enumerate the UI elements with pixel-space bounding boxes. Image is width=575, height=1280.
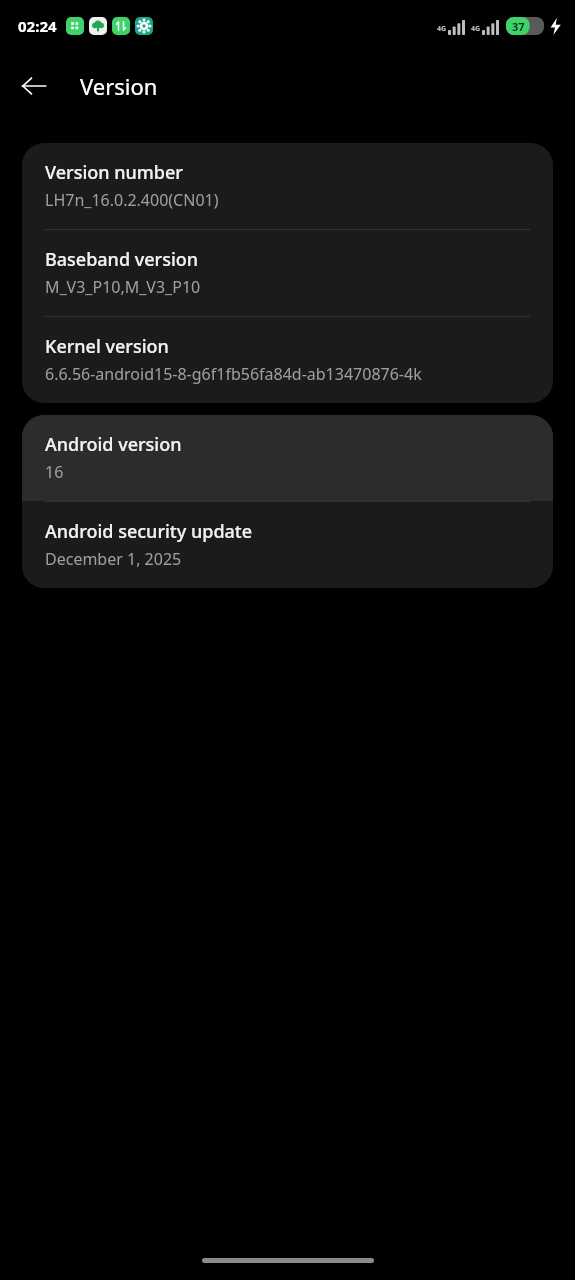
staticText: 02:24: [18, 16, 57, 36]
staticText: Version: [80, 71, 158, 101]
staticText: Version number: [45, 160, 183, 185]
button[interactable]: Android security update: [22, 502, 553, 588]
button[interactable]: Back: [9, 61, 59, 111]
button[interactable]: Baseband version: [22, 230, 553, 316]
button[interactable]: Android version: [22, 415, 553, 501]
staticText: Android security update: [45, 519, 253, 544]
staticText: M_V3_P10,M_V3_P10: [45, 276, 201, 298]
button[interactable]: Kernel version: [22, 317, 553, 403]
staticText: 6.6.56-android15-8-g6f1fb56fa84d-ab13470…: [45, 363, 422, 385]
staticText: LH7n_16.0.2.400(CN01): [45, 189, 219, 211]
staticText: Android version: [45, 432, 182, 457]
staticText: Kernel version: [45, 334, 169, 359]
staticText: 4G: [471, 24, 481, 34]
button[interactable]: Version number: [22, 143, 553, 229]
staticText: December 1, 2025: [45, 548, 182, 570]
staticText: 4G: [437, 24, 447, 34]
staticText: 37: [512, 19, 525, 34]
staticText: 16: [45, 461, 64, 483]
staticText: Baseband version: [45, 247, 199, 272]
